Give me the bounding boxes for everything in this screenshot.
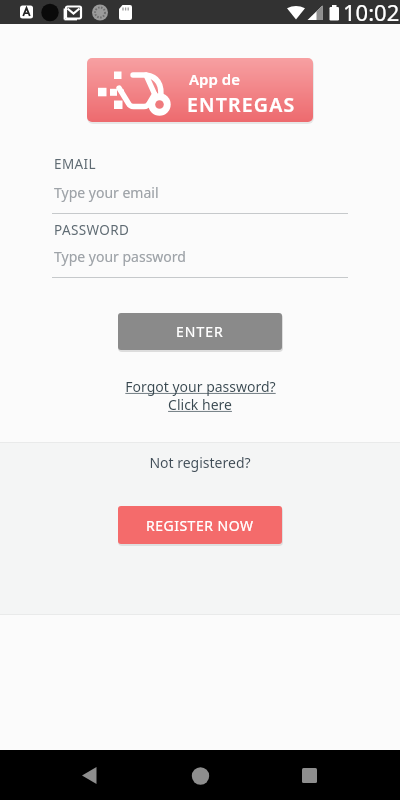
button[interactable] bbox=[70, 763, 110, 789]
button[interactable]: Click here bbox=[168, 395, 232, 414]
button[interactable]: ENTER bbox=[118, 313, 282, 350]
staticText: Type your email bbox=[54, 183, 159, 202]
staticText: App de bbox=[189, 69, 240, 89]
button[interactable]: Type your email bbox=[52, 176, 348, 213]
staticText: Type your password bbox=[54, 247, 186, 266]
staticText: Not registered? bbox=[0, 453, 400, 472]
button[interactable] bbox=[180, 763, 220, 789]
staticText: EMAIL bbox=[54, 155, 97, 173]
staticText: 10:02 bbox=[343, 0, 400, 21]
button[interactable] bbox=[290, 763, 330, 789]
button[interactable]: REGISTER NOW bbox=[118, 506, 282, 544]
staticText: REGISTER NOW bbox=[146, 516, 254, 535]
button[interactable]: Forgot your password? bbox=[125, 377, 276, 396]
staticText: ENTER bbox=[176, 322, 224, 341]
staticText: PASSWORD bbox=[54, 221, 130, 239]
button[interactable]: App de bbox=[87, 58, 313, 122]
button[interactable]: Type your password bbox=[52, 240, 348, 277]
staticText: ENTREGAS bbox=[187, 91, 296, 118]
